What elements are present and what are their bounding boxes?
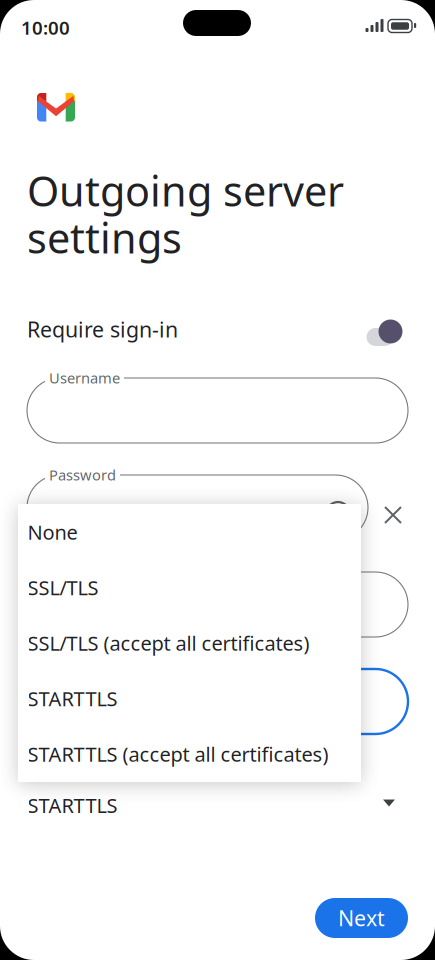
button[interactable]: SSL/TLS (18, 560, 361, 615)
staticText: settings (27, 210, 182, 265)
staticText: Server (49, 562, 92, 581)
button[interactable]: STARTTLS (accept all certificates) (18, 726, 361, 782)
staticText: Outgoing server (27, 163, 344, 218)
button[interactable]: None (18, 504, 361, 560)
staticText: 10:00 (21, 15, 70, 40)
button[interactable]: SSL/TLS (accept all certificates) (18, 615, 361, 671)
staticText: SSL/TLS (27, 574, 98, 601)
staticText: SSL/TLS (accept all certificates) (27, 630, 309, 656)
button[interactable]: Require sign-in (365, 317, 407, 346)
button[interactable]: Show password (321, 493, 355, 527)
staticText: Require sign-in (27, 315, 178, 343)
staticText: Next (338, 904, 385, 932)
button[interactable]: Next (315, 898, 408, 938)
staticText: STARTTLS (27, 685, 117, 712)
staticText: Username (49, 368, 120, 387)
staticText: Password (49, 465, 116, 484)
staticText: None (27, 519, 77, 545)
button[interactable]: STARTTLS (18, 671, 361, 726)
button[interactable]: STARTTLS (27, 779, 408, 823)
staticText: STARTTLS (27, 792, 117, 819)
button[interactable]: Close (375, 497, 411, 533)
staticText: STARTTLS (accept all certificates) (27, 741, 328, 767)
